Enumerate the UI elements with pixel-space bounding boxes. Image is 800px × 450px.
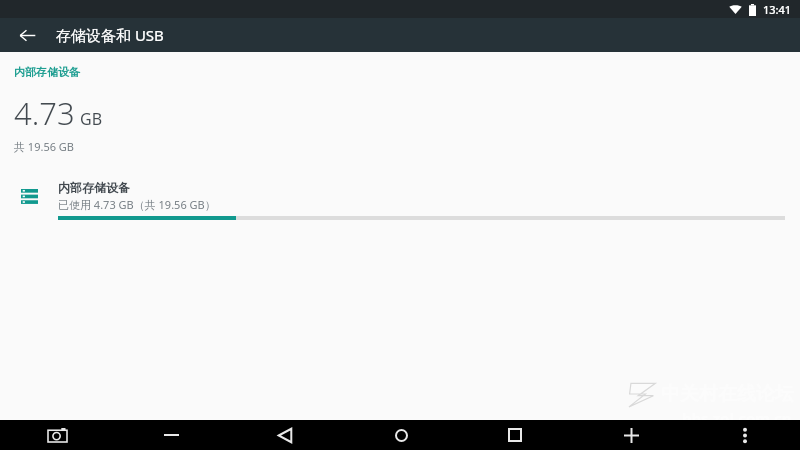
button[interactable]: Home [382, 420, 420, 450]
button[interactable]: Camera [38, 420, 76, 450]
button[interactable]: Minimize [152, 420, 190, 450]
button[interactable]: Add [612, 420, 650, 450]
button[interactable]: 内部存储设备 [0, 176, 800, 226]
button[interactable]: Recents [496, 420, 534, 450]
staticText: bbs.zol.com.cn [682, 408, 792, 428]
staticText: 内部存储设备 [58, 180, 130, 195]
button[interactable]: More options [726, 420, 764, 450]
staticText: 已使用 4.73 GB（共 19.56 GB） [58, 197, 216, 212]
button[interactable]: Back [266, 420, 304, 450]
staticText: 4.73 [14, 92, 75, 134]
staticText: 共 19.56 GB [14, 139, 74, 154]
staticText: 存储设备和 USB [56, 25, 164, 45]
staticText: GB [80, 108, 103, 130]
staticText: 内部存储设备 [14, 65, 80, 79]
button[interactable]: Back [10, 18, 44, 52]
staticText: 13:41 [763, 2, 792, 17]
